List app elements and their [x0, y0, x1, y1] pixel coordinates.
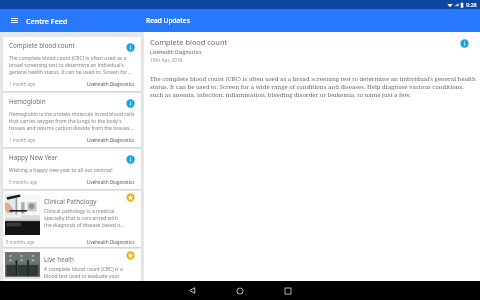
staticText: 5 months ago [6, 239, 35, 245]
staticText: Livehealth Diagnostics [87, 137, 135, 143]
staticText: Read Updates [146, 16, 190, 25]
button[interactable]: Clinical Pathology [3, 191, 141, 247]
other: Featured [126, 251, 135, 260]
button[interactable]: Open navigation drawer [3, 9, 26, 32]
staticText: The complete blood count (CBC) is often … [150, 75, 477, 99]
staticText: 1 month ago [9, 81, 36, 87]
staticText: 9:28 [466, 1, 477, 8]
other: Info [126, 99, 135, 108]
button[interactable]: Home [220, 281, 260, 300]
button[interactable]: Hemoglobin [3, 93, 141, 147]
button[interactable]: Happy New Year [3, 149, 141, 189]
button[interactable]: Live healh [3, 249, 141, 281]
staticText: Live healh [44, 255, 126, 264]
staticText: Complete blood count [150, 37, 228, 47]
staticText: Wishing a happy new year to all our cent… [9, 167, 113, 174]
button[interactable]: Info [460, 39, 469, 48]
staticText: Livehealth Diagnostics [87, 239, 135, 245]
staticText: Centre Feed [26, 16, 68, 26]
staticText: A complete blood count (CBC) is a blood … [44, 266, 125, 279]
other: Featured [126, 193, 135, 202]
button[interactable]: Back [172, 281, 212, 300]
other: Info [126, 155, 135, 164]
staticText: The complete blood count (CBC) is often … [9, 55, 135, 76]
staticText: Livehealth Diagnostics [87, 81, 135, 87]
staticText: 19th Apr, 2016 [150, 57, 183, 64]
button[interactable]: Recent apps [268, 281, 308, 300]
staticText: Happy New Year [9, 153, 126, 162]
staticText: Hemoglobin is the protein molecule in re… [9, 111, 135, 132]
other: Info [126, 43, 135, 52]
staticText: 5 months ago [9, 179, 38, 185]
staticText: Hemoglobin [9, 97, 126, 106]
staticText: Complete blood count [9, 41, 126, 50]
staticText: 1 month ago [9, 137, 36, 143]
staticText: Livehealth Diagnostics [150, 49, 202, 56]
button[interactable]: Read Updates [144, 11, 192, 30]
staticText: Clinical pathology is a medical specialt… [44, 208, 125, 229]
staticText: Clinical Pathology [44, 197, 126, 206]
other: Info [460, 39, 469, 48]
staticText: Livehealth Diagnostics [87, 179, 135, 185]
button[interactable]: Complete blood count [3, 37, 141, 91]
